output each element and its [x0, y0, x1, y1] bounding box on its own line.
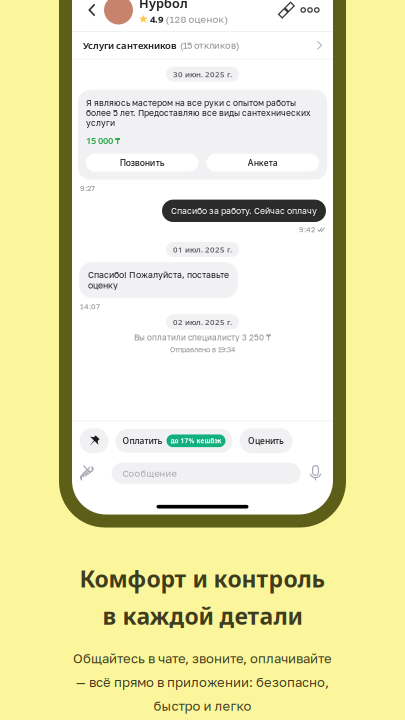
staticText: 02 июл. 2025 г. — [173, 317, 232, 327]
button[interactable]: Позвонить — [86, 154, 198, 172]
staticText: Позвонить — [120, 157, 165, 169]
staticText: Общайтесь в чате, звоните, оплачивайте — [73, 650, 332, 666]
button[interactable]: Pin — [79, 428, 108, 453]
button[interactable]: More — [295, 0, 325, 21]
staticText: 9:42 — [299, 225, 315, 234]
staticText: (15 откликов) — [180, 40, 239, 51]
staticText: 9:27 — [80, 184, 95, 193]
staticText: — всё прямо в приложении: безопасно, — [76, 674, 329, 690]
staticText: Нурбол — [139, 0, 188, 12]
staticText: Спасибо! Пожалуйста, поставьте оценку — [88, 270, 229, 290]
staticText: 4.9 — [150, 13, 163, 26]
staticText: быстро и легко — [153, 698, 251, 713]
button[interactable]: Attach — [76, 462, 95, 484]
staticText: Спасибо за работу. Сейчас оплачу — [171, 206, 317, 216]
staticText: Вы оплатили специалисту 3 250 ₸ — [134, 332, 271, 342]
staticText: 15 000 ₸ — [86, 134, 120, 147]
button[interactable]: Оценить — [239, 428, 292, 453]
staticText: Анкета — [248, 157, 278, 169]
staticText: до 17% кешбэк — [170, 436, 221, 445]
button[interactable]: Анкета — [206, 154, 319, 172]
staticText: Сообщение — [122, 468, 176, 479]
staticText: (128 оценок) — [166, 13, 229, 25]
staticText: Оплатить — [122, 435, 162, 447]
button[interactable]: Voice message — [308, 462, 323, 484]
staticText: Комфорт и контроль — [79, 563, 325, 594]
staticText: Отправлено в 19:34 — [170, 345, 235, 354]
button[interactable]: Оплатить — [115, 429, 232, 453]
button[interactable]: Услуги сантехников — [72, 32, 333, 59]
staticText: Услуги сантехников — [83, 39, 177, 52]
staticText: 01 июл. 2025 г. — [173, 244, 232, 255]
button[interactable]: Back — [80, 0, 104, 25]
staticText: 14:07 — [80, 302, 100, 311]
staticText: 30 июн. 2025 г. — [173, 69, 232, 79]
staticText: в каждой детали — [102, 600, 302, 631]
staticText: Я являюсь мастером на все руки с опытом … — [86, 98, 311, 128]
button[interactable]: Call — [278, 1, 295, 19]
staticText: Оценить — [248, 435, 284, 447]
